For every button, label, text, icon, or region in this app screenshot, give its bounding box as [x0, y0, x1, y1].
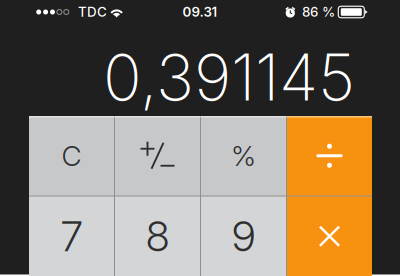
button[interactable]: 7 [29, 196, 114, 276]
staticText: 9 [232, 211, 255, 261]
staticText: 7 [61, 211, 82, 261]
button[interactable]: Plus minus [115, 116, 200, 195]
button[interactable]: C [29, 116, 114, 195]
staticText: 0,391145 [103, 38, 355, 116]
staticText: 8 [146, 211, 169, 261]
button[interactable]: 9 [201, 196, 286, 276]
button[interactable]: Divide [287, 116, 372, 195]
button[interactable]: Multiply [287, 196, 372, 276]
staticText: % [231, 139, 256, 173]
staticText: 09.31 [182, 4, 217, 20]
button[interactable]: % [201, 116, 286, 195]
staticText: TDC [78, 4, 107, 20]
staticText: C [61, 139, 81, 173]
staticText: 86 % [302, 4, 335, 20]
button[interactable]: 8 [115, 196, 200, 276]
